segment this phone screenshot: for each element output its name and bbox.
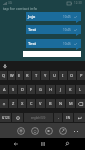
button[interactable]: Backspace xyxy=(76,99,85,108)
button[interactable]: V xyxy=(36,99,45,108)
staticText: tap for contact info xyxy=(3,6,38,11)
button[interactable]: &123 xyxy=(0,113,11,122)
button[interactable]: C xyxy=(27,99,35,108)
button[interactable]: I xyxy=(59,71,67,80)
button[interactable]: EN xyxy=(63,113,73,122)
staticText: D xyxy=(21,87,24,92)
staticText: 10:45 xyxy=(63,15,71,19)
button[interactable]: T xyxy=(32,71,40,80)
staticText: C xyxy=(30,101,33,106)
staticText: G xyxy=(39,87,42,92)
staticText: Test xyxy=(28,27,36,33)
button[interactable]: . xyxy=(54,113,62,122)
button[interactable]: W xyxy=(8,71,15,80)
button[interactable]: D xyxy=(18,85,26,94)
button[interactable]: Space xyxy=(24,113,53,122)
staticText: T xyxy=(35,73,38,78)
button[interactable]: Attach file xyxy=(59,127,67,135)
button[interactable]: Emoticon xyxy=(31,127,39,135)
button[interactable]: Search xyxy=(63,140,71,148)
button[interactable]: Send xyxy=(45,127,53,135)
button[interactable]: Shift xyxy=(0,99,8,108)
button[interactable]: O xyxy=(68,71,76,80)
button[interactable]: P xyxy=(77,71,85,80)
staticText: 10:46 xyxy=(63,42,71,46)
button[interactable]: tap for contact info xyxy=(3,4,85,12)
button[interactable]: Q xyxy=(0,71,7,80)
staticText: 10:45 xyxy=(63,28,71,32)
button[interactable]: J xyxy=(56,85,65,94)
button[interactable]: E xyxy=(16,71,23,80)
button[interactable]: Z xyxy=(9,99,17,108)
staticText: E xyxy=(18,73,21,78)
button[interactable]: Y xyxy=(41,71,49,80)
staticText: Jojo xyxy=(28,14,36,20)
staticText: X xyxy=(21,101,24,106)
staticText: H xyxy=(49,87,52,92)
staticText: B xyxy=(49,101,52,106)
staticText: I xyxy=(62,73,64,78)
button[interactable] xyxy=(26,12,81,21)
button[interactable] xyxy=(26,39,81,48)
button[interactable]: U xyxy=(50,71,58,80)
button[interactable]: G xyxy=(36,85,45,94)
staticText: Y xyxy=(44,73,47,78)
staticText: W xyxy=(10,73,14,78)
button[interactable]: Start xyxy=(39,140,47,148)
staticText: O xyxy=(70,73,74,78)
button[interactable]: R xyxy=(24,71,31,80)
staticText: L xyxy=(79,87,82,92)
staticText: Z xyxy=(12,101,15,106)
button[interactable]: A xyxy=(0,85,8,94)
button[interactable]: X xyxy=(18,99,26,108)
staticText: M xyxy=(69,101,73,106)
button[interactable]: F xyxy=(27,85,35,94)
button[interactable]: Attach xyxy=(17,127,25,135)
button[interactable]: B xyxy=(46,99,55,108)
staticText: english (US) xyxy=(31,116,46,120)
button[interactable]: Voice input xyxy=(2,63,8,69)
staticText: S xyxy=(12,87,15,92)
staticText: P xyxy=(80,73,83,78)
staticText: 12:30 xyxy=(74,1,82,5)
button[interactable]: L xyxy=(76,85,85,94)
staticText: Test xyxy=(28,41,36,47)
staticText: R xyxy=(26,73,29,78)
staticText: J xyxy=(60,87,62,92)
staticText: K xyxy=(69,87,72,92)
staticText: &123 xyxy=(2,116,10,120)
button[interactable]: M xyxy=(66,99,75,108)
button[interactable]: Emoji xyxy=(12,113,23,122)
staticText: V xyxy=(39,101,42,106)
staticText: A xyxy=(3,87,6,92)
button[interactable]: More xyxy=(73,128,81,134)
staticText: N xyxy=(59,101,63,106)
button[interactable]: Back xyxy=(12,140,20,148)
button[interactable] xyxy=(26,25,81,34)
staticText: EN xyxy=(66,116,70,120)
button[interactable]: Enter xyxy=(74,113,85,122)
staticText: U xyxy=(53,73,56,78)
button[interactable]: K xyxy=(66,85,75,94)
staticText: Q xyxy=(2,73,6,78)
staticText: F xyxy=(30,87,33,92)
button[interactable]: N xyxy=(56,99,65,108)
staticText: . xyxy=(58,115,59,120)
button[interactable]: S xyxy=(9,85,17,94)
button[interactable]: H xyxy=(46,85,55,94)
staticText: 3G xyxy=(8,1,12,5)
